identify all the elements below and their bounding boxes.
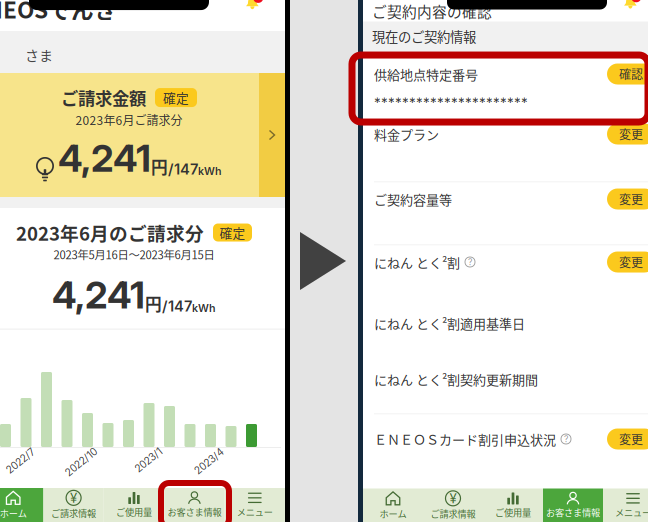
staticText: kWh	[198, 165, 222, 178]
button[interactable]: ¥	[43, 488, 104, 522]
staticText: 円	[151, 154, 168, 179]
button[interactable]: ホーム	[0, 488, 43, 522]
staticText: 円	[145, 291, 162, 316]
staticText: ご契約内容の確認	[372, 0, 492, 22]
button[interactable]: 変更	[607, 251, 648, 272]
button[interactable]: 変更	[607, 123, 648, 144]
button[interactable]: 変更	[607, 188, 648, 209]
staticText: にねん とく²割	[374, 252, 460, 271]
staticText: 2023/4	[192, 457, 227, 469]
staticText: 変更	[619, 253, 643, 271]
staticText: ホーム	[0, 506, 27, 520]
button[interactable]: 変更	[607, 428, 648, 449]
staticText: ご請求情報	[430, 507, 475, 520]
button[interactable]: お客さま情報	[543, 488, 603, 522]
staticText: にねん とく²割適用基準日	[374, 313, 525, 332]
staticText: ＥＮＥＯＳカード割引申込状況	[374, 429, 556, 448]
staticText: メニュー	[615, 505, 648, 519]
staticText: ENEOSでんき	[0, 0, 117, 25]
staticText: 変更	[619, 430, 643, 448]
staticText: 9+	[632, 0, 641, 1]
button[interactable]: ホーム	[363, 488, 423, 522]
staticText: さま	[25, 45, 53, 65]
staticText: 2023年6月のご請求分	[16, 219, 204, 246]
staticText: 変更	[619, 190, 643, 208]
staticText: 2023年6月ご請求分	[75, 111, 182, 128]
button[interactable]: メニュー	[225, 488, 285, 522]
staticText: 確定	[219, 223, 245, 242]
staticText: /147	[162, 297, 192, 315]
staticText: 2022/7	[4, 457, 38, 469]
staticText: 変更	[619, 125, 643, 143]
staticText: 確定	[163, 88, 189, 107]
button[interactable]: お客さま情報 tab highlighted	[161, 483, 229, 522]
staticText: 2023年5月16日〜2023年6月15日	[53, 246, 214, 262]
staticText: お客さま情報	[167, 505, 221, 518]
staticText: ¥	[449, 490, 456, 506]
button[interactable]: 確認	[607, 63, 648, 84]
staticText: 2022/10	[62, 457, 100, 469]
staticText: 4,241	[58, 135, 151, 181]
staticText: お客さま情報	[546, 505, 600, 519]
staticText: ご使用量	[116, 505, 152, 518]
staticText: ?	[468, 257, 472, 267]
staticText: 料金プラン	[374, 124, 439, 143]
staticText: kWh	[192, 302, 216, 315]
staticText: 現在のご契約情報	[372, 26, 476, 46]
staticText: 供給地点特定番号	[374, 64, 478, 83]
button[interactable]: Notifications	[621, 0, 640, 9]
button[interactable]: ご請求金額	[0, 73, 285, 197]
staticText: にねん とく²割契約更新期間	[374, 369, 538, 388]
staticText: メニュー	[237, 505, 273, 518]
staticText: 4,241	[52, 272, 145, 318]
button[interactable]: Notifications	[243, 0, 262, 10]
staticText: ホーム	[379, 507, 406, 520]
staticText: ご請求情報	[51, 506, 96, 520]
button[interactable]: ご使用量	[483, 488, 543, 522]
staticText: ¥	[70, 490, 77, 506]
staticText: ご請求金額	[61, 85, 146, 110]
button[interactable]: お客さま情報	[164, 488, 225, 522]
button[interactable]: メニュー	[603, 488, 648, 522]
staticText: 2023/1	[133, 457, 165, 469]
button[interactable]: ご使用量	[104, 488, 164, 522]
staticText: ご契約容量等	[374, 189, 452, 208]
staticText: 確認	[619, 65, 643, 83]
staticText: /147	[168, 160, 198, 178]
staticText: ?	[564, 434, 568, 444]
staticText: **********************	[374, 94, 528, 111]
staticText: ご使用量	[495, 505, 531, 519]
button[interactable]: ¥	[423, 488, 483, 522]
